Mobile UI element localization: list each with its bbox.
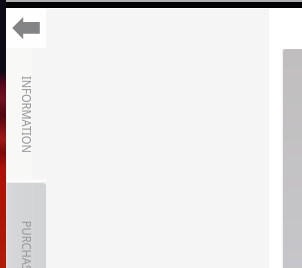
button[interactable] bbox=[5, 47, 32, 183]
button[interactable] bbox=[283, 49, 302, 268]
button[interactable] bbox=[6, 183, 46, 268]
staticText: INFORMATION bbox=[18, 75, 36, 153]
button[interactable]: Back bbox=[5, 8, 46, 48]
staticText: PURCHASE bbox=[18, 221, 36, 268]
